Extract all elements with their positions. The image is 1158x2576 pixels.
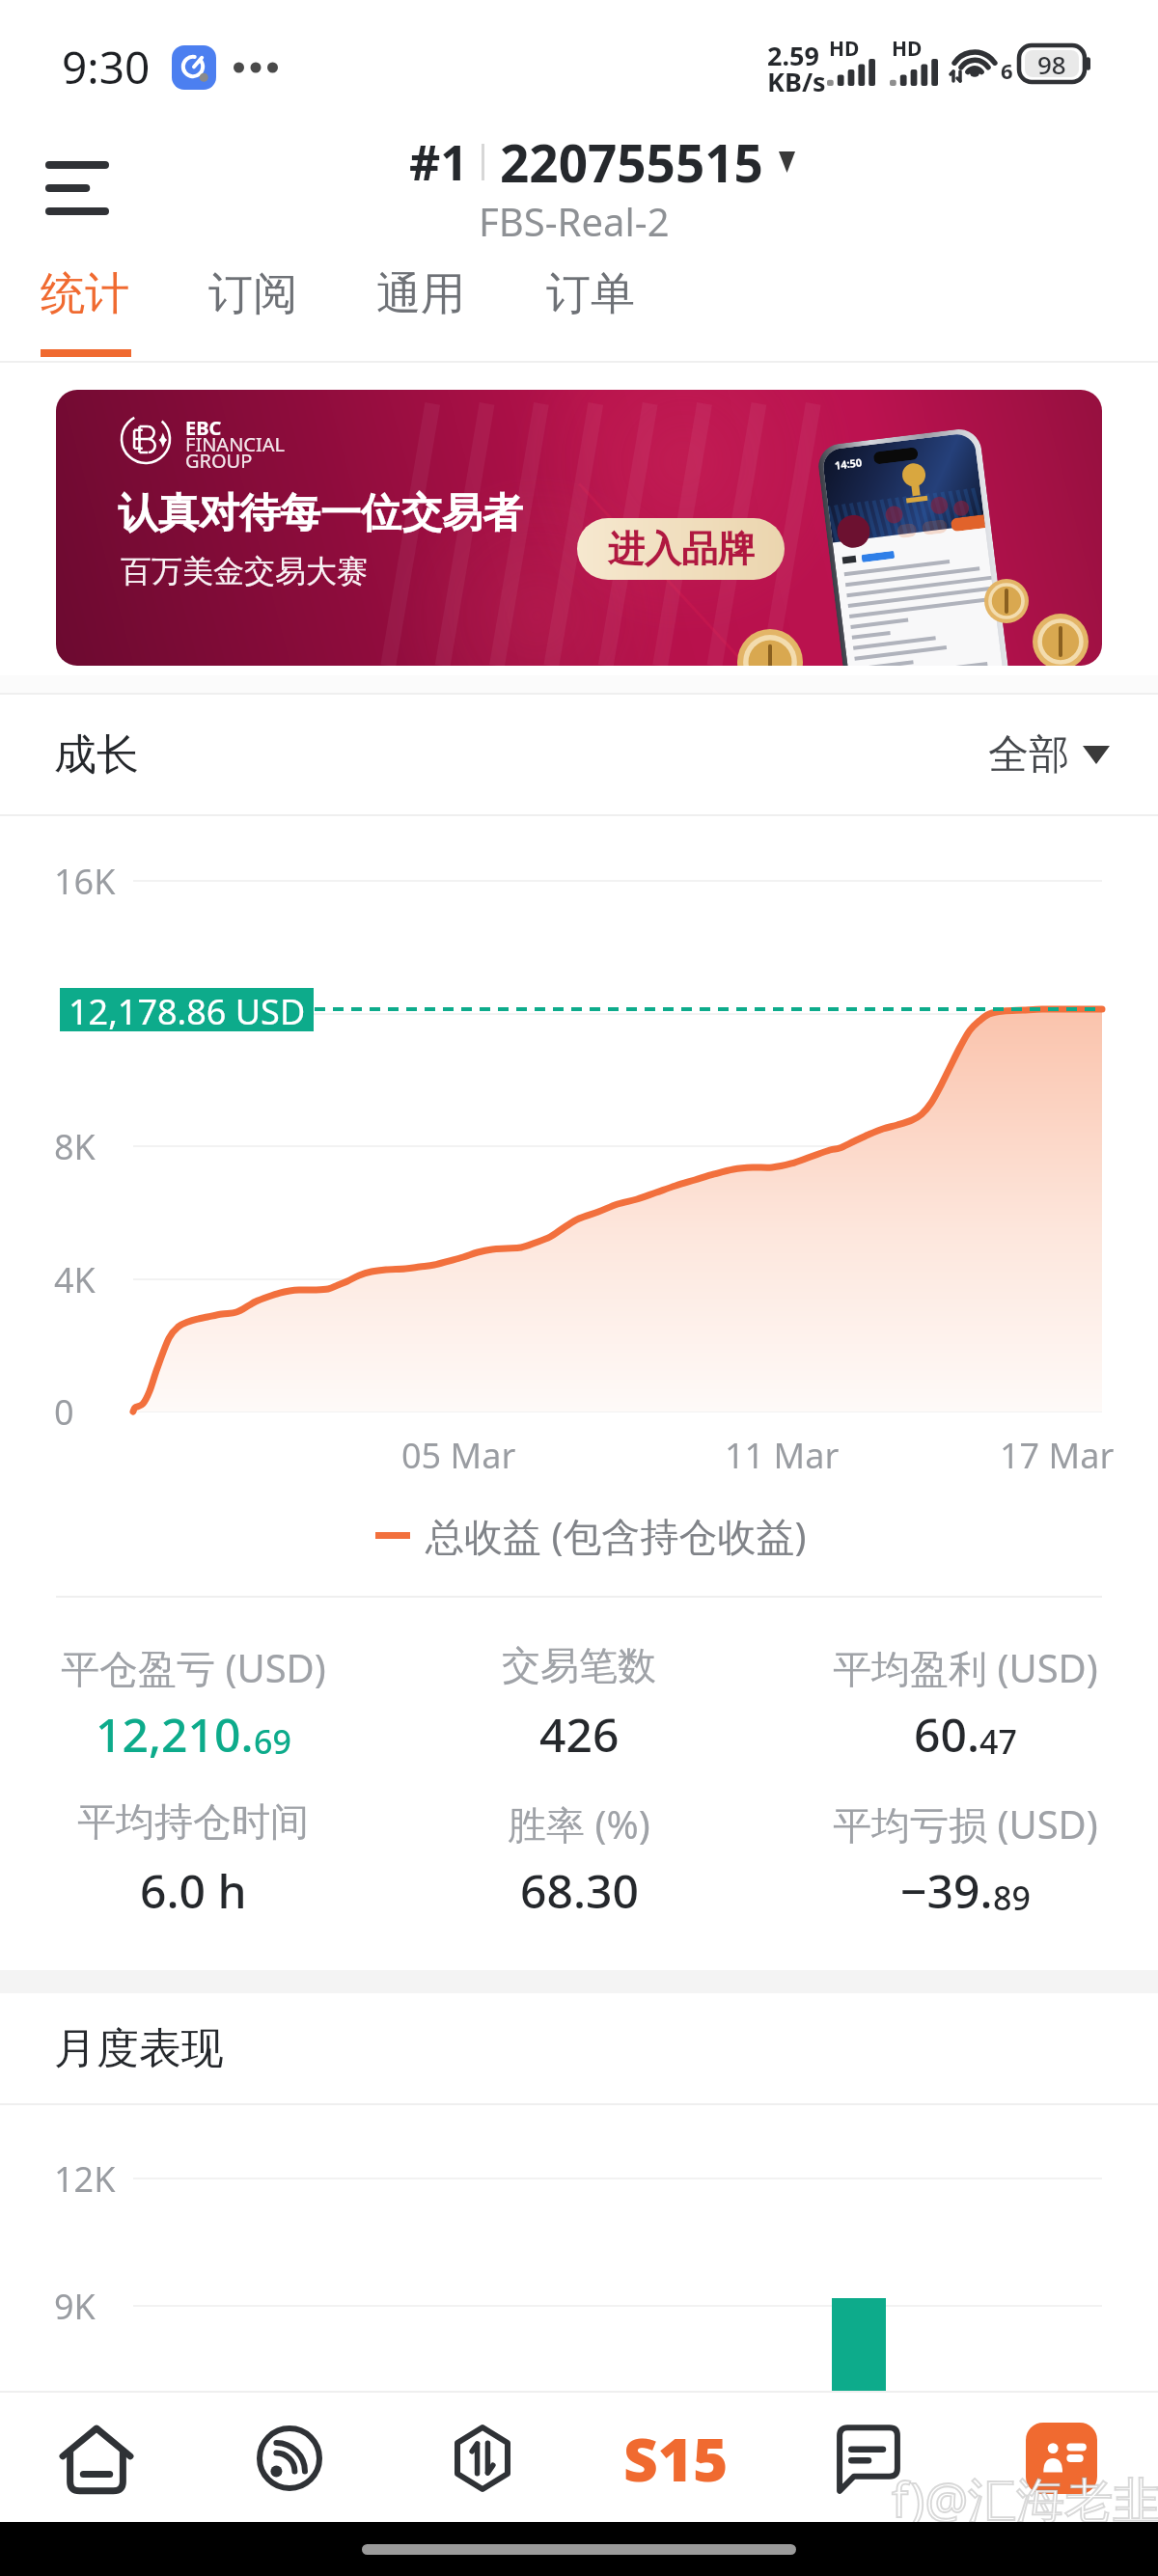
staticText: 426 [539,1703,620,1766]
staticText: 220755515 [500,127,763,197]
staticText: 百万美金交易大赛 [121,552,368,590]
button[interactable]: Trade [386,2395,579,2522]
staticText: 2.59 [767,38,819,73]
button[interactable]: Menu [25,137,127,239]
staticText: 成长 [54,728,139,781]
button[interactable]: 全部 [988,729,1110,781]
staticText: 平均亏损 (USD) [833,1797,1098,1850]
staticText: 9K [54,2283,96,2330]
staticText: 6.0 h [140,1859,247,1922]
staticText: 17 Mar [1000,1432,1115,1479]
staticText: 总收益 (包含持仓收益) [426,1509,807,1562]
staticText: 订单 [546,266,635,322]
staticText: 4K [54,1256,96,1303]
button[interactable]: Messages [772,2395,965,2522]
staticText: HD [829,35,860,63]
staticText: 11 Mar [725,1432,840,1479]
staticText: #1 [409,129,468,195]
button[interactable]: Home [0,2395,193,2522]
button[interactable]: S15 [579,2395,772,2522]
button[interactable]: 订阅 [170,253,336,363]
staticText: FINANCIAL [185,431,286,457]
staticText: 统计 [41,266,129,322]
staticText: 平仓盈亏 (USD) [61,1641,326,1694]
staticText: S15 [623,2418,729,2499]
staticText: 认真对待每一位交易者 [118,488,523,539]
staticText: 全部 [988,729,1069,781]
staticText: 98 [1037,47,1066,81]
staticText: 12K [54,2155,116,2203]
staticText: 68.30 [520,1859,639,1922]
staticText: 12,178.86 USD [69,988,306,1031]
button[interactable]: 统计 [2,253,168,363]
staticText: 05 Mar [401,1432,516,1479]
staticText: 通用 [376,266,465,322]
staticText: 69 [254,1719,291,1764]
button[interactable]: 订单 [508,253,674,363]
staticText: 16K [54,858,116,905]
staticText: 14:50 [834,455,863,472]
button[interactable]: Profile [965,2395,1158,2522]
staticText: 47 [979,1719,1017,1764]
staticText: 6 [1001,56,1013,85]
staticText: 60. [914,1703,979,1766]
staticText: 9:30 [62,37,151,97]
button[interactable]: #1 [392,120,778,251]
button[interactable]: 14:50 [56,390,1102,666]
staticText: 平均盈利 (USD) [833,1641,1098,1694]
staticText: 12,210. [96,1703,254,1766]
staticText: 平均持仓时间 [77,1797,309,1846]
staticText: GROUP [185,448,253,474]
staticText: 89 [993,1876,1031,1920]
staticText: 订阅 [208,266,297,322]
button[interactable]: 进入品牌 [577,518,785,580]
staticText: 交易笔数 [502,1641,656,1689]
staticText: HD [892,35,923,63]
staticText: f)@汇海老韭 [892,2466,1158,2532]
staticText: 0 [54,1388,74,1436]
staticText: EBC [185,415,222,441]
staticText: FBS-Real-2 [479,195,670,247]
button[interactable]: 通用 [338,253,504,363]
staticText: 8K [54,1123,96,1170]
staticText: 月度表现 [54,2022,224,2075]
staticText: −39. [900,1859,993,1922]
staticText: 进入品牌 [608,526,755,572]
staticText: 胜率 (%) [508,1797,650,1850]
staticText: KB/s [767,64,826,99]
button[interactable]: Signals [193,2395,386,2522]
staticText: f)@汇海老韭 [892,2466,1158,2532]
